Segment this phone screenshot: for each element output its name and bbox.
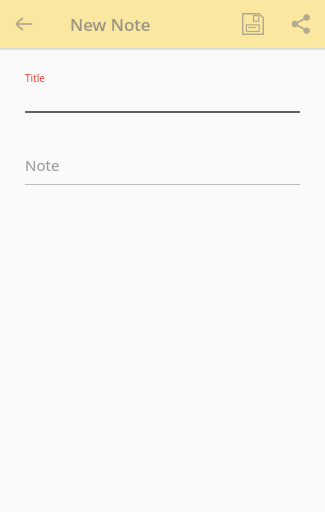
- button[interactable]: Note: [25, 155, 300, 185]
- button[interactable]: Share: [277, 0, 325, 48]
- staticText: Title: [25, 71, 45, 85]
- button[interactable]: Back: [0, 0, 48, 48]
- staticText: New Note: [70, 13, 151, 36]
- staticText: Note: [25, 155, 60, 175]
- button[interactable]: Title: [25, 71, 300, 113]
- button[interactable]: Save: [229, 0, 277, 48]
